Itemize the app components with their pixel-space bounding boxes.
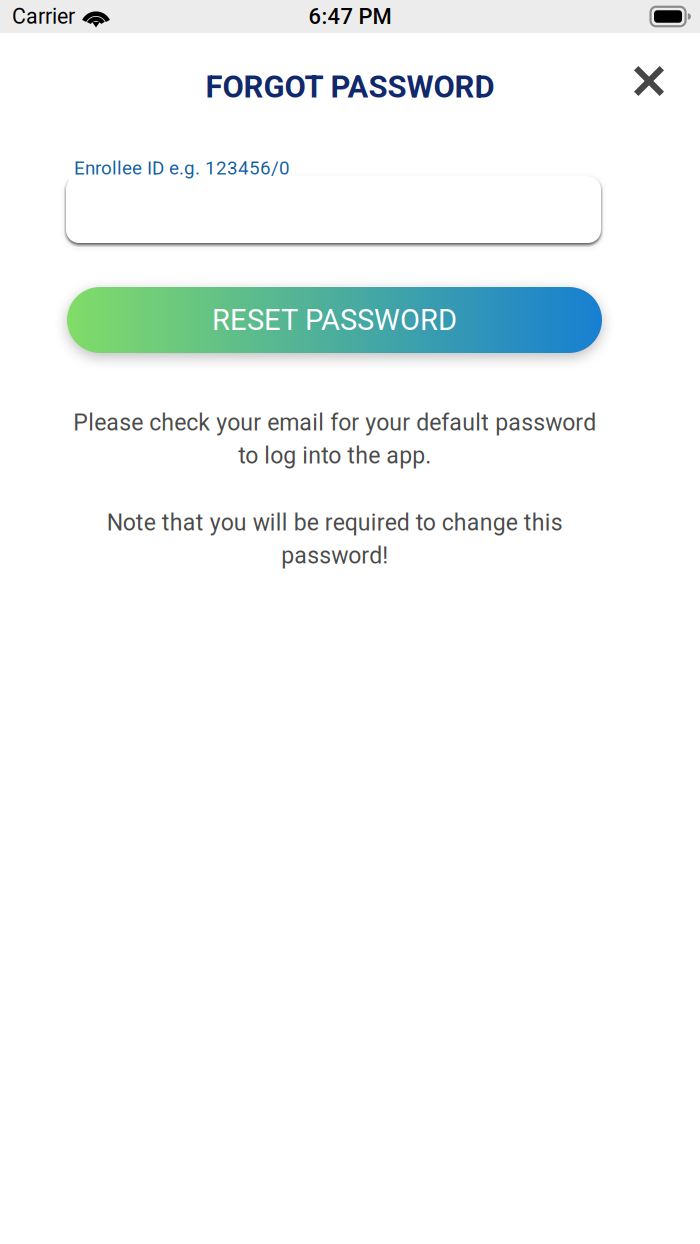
staticText: FORGOT PASSWORD bbox=[205, 69, 494, 105]
staticText: Note that you will be required to change… bbox=[106, 509, 562, 569]
staticText: Carrier bbox=[12, 4, 75, 29]
button[interactable]: RESET PASSWORD bbox=[67, 287, 602, 353]
staticText: 6:47 PM bbox=[308, 4, 391, 29]
button[interactable]: Close bbox=[622, 56, 676, 106]
staticText: RESET PASSWORD bbox=[212, 303, 457, 337]
staticText: Please check your email for your default… bbox=[73, 409, 596, 469]
staticText: Enrollee ID e.g. 123456/0 bbox=[74, 157, 290, 179]
